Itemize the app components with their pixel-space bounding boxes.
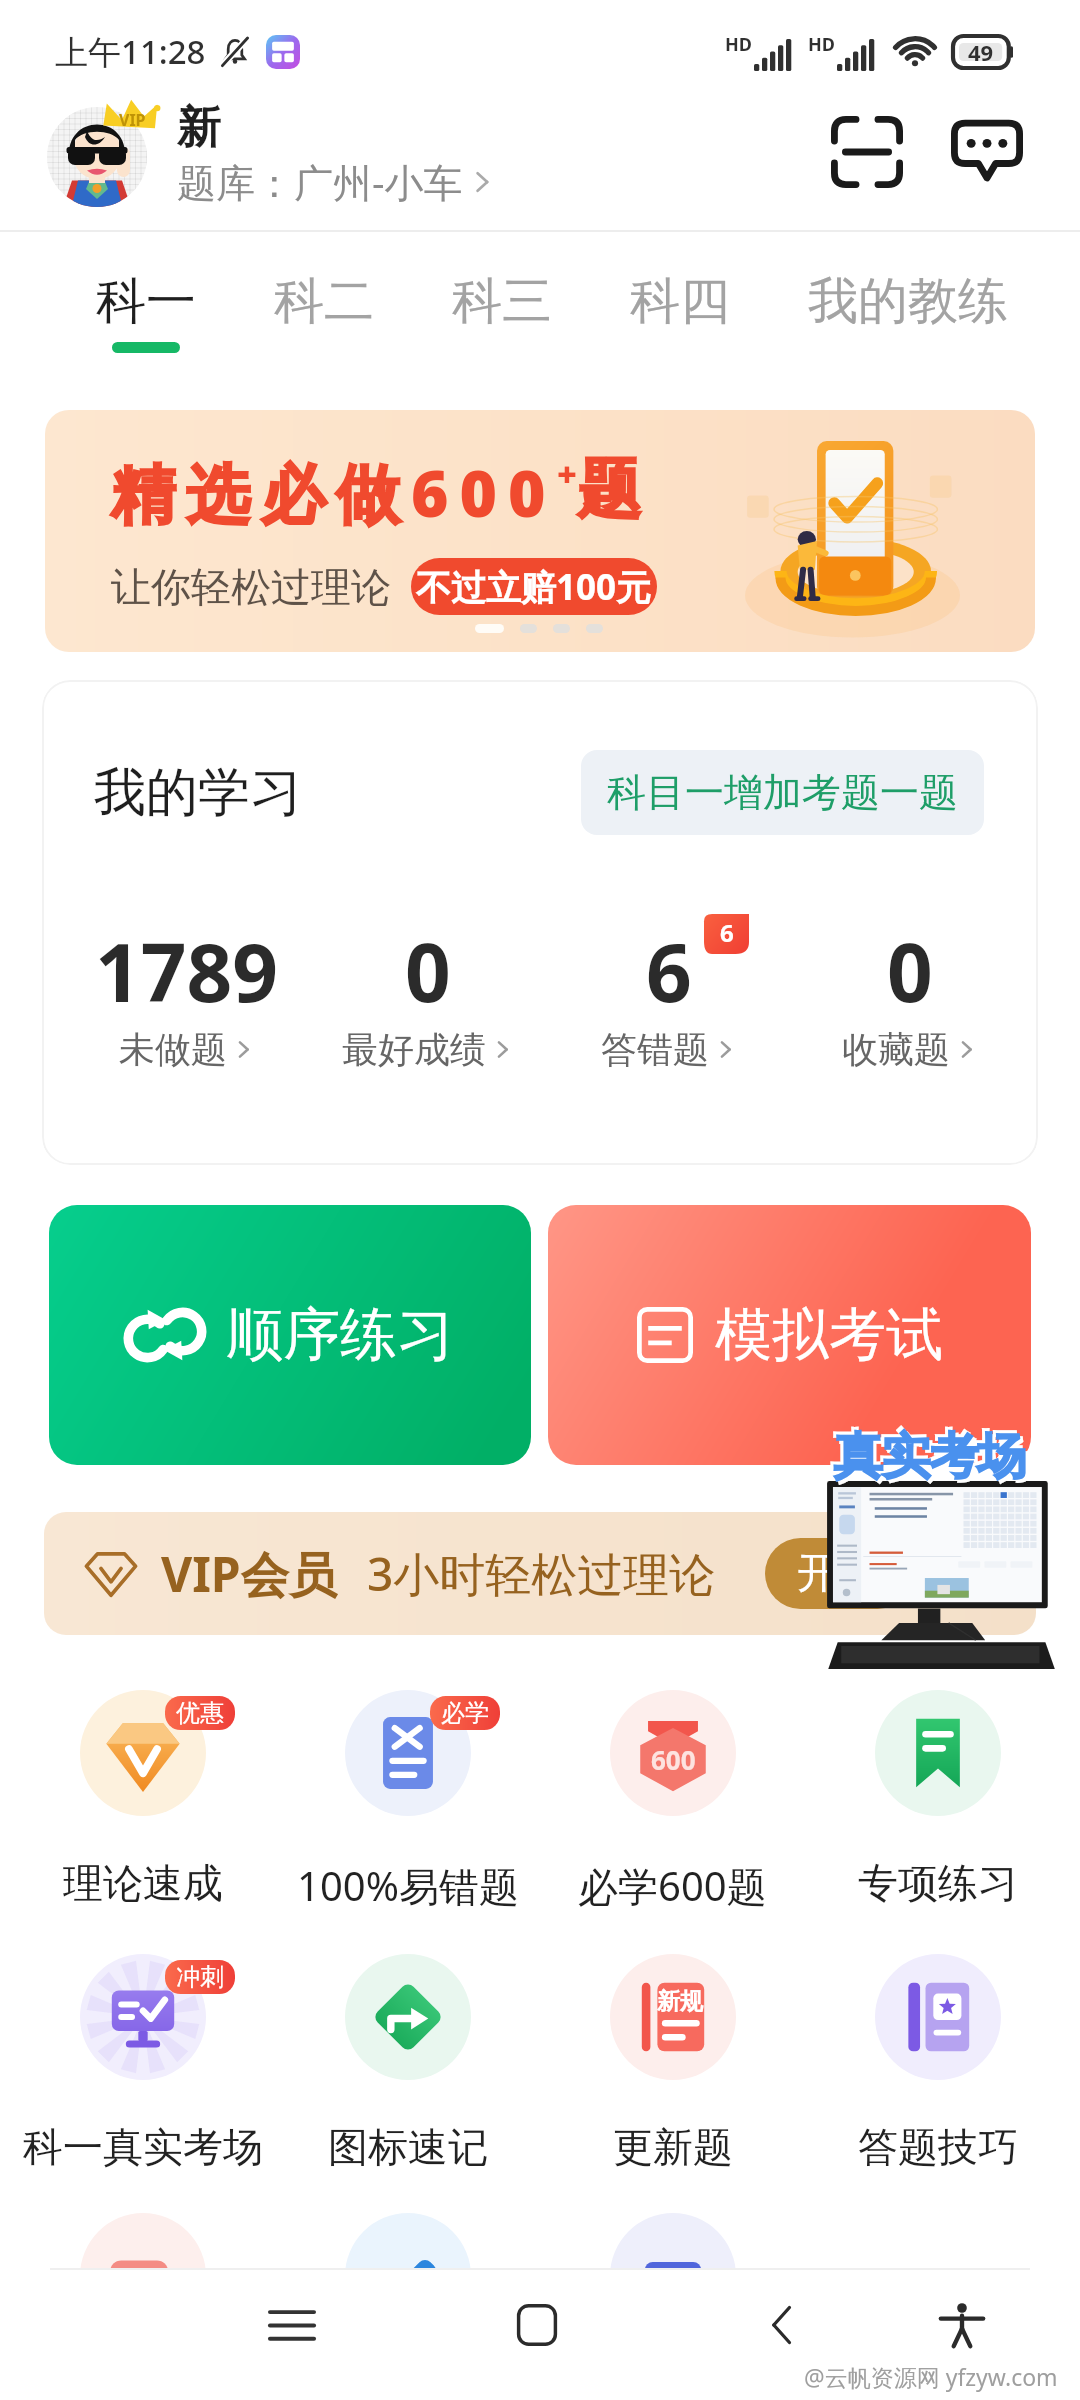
button[interactable]: Scan code <box>812 97 922 207</box>
button[interactable]: 科一 <box>96 234 196 380</box>
button[interactable]: Real exam room ad <box>818 1420 1058 1672</box>
staticText: 科二 <box>274 270 374 333</box>
button[interactable]: 我的教练 <box>808 234 1008 380</box>
button[interactable]: Recents <box>237 2270 347 2380</box>
button[interactable]: 科目一增加考题一题 <box>581 750 984 835</box>
staticText: 答题技巧 <box>858 2122 1018 2172</box>
staticText: 真实考场 <box>834 1426 1026 1488</box>
button[interactable]: 6 <box>548 916 789 1072</box>
button[interactable]: Messages <box>932 97 1042 207</box>
staticText: 精选必做600 <box>111 449 557 536</box>
staticText: 6 <box>646 916 692 1025</box>
staticText: 真实考场 <box>831 1423 1023 1485</box>
button[interactable]: 优惠 <box>10 1690 275 1908</box>
staticText: 题 <box>577 449 641 530</box>
staticText: 模拟考试 <box>715 1299 943 1371</box>
button[interactable]: 0 <box>307 916 548 1072</box>
staticText: 0 <box>887 916 933 1025</box>
staticText: 不过立赔100元 <box>416 563 652 611</box>
staticText: VIP <box>119 109 146 131</box>
staticText: 冲刺 <box>176 1962 224 1992</box>
button[interactable]: Profile avatar <box>47 98 159 207</box>
button[interactable]: 新规 <box>540 1954 805 2172</box>
button[interactable] <box>275 2213 540 2400</box>
staticText: 开通 <box>797 1547 881 1600</box>
button[interactable]: Back <box>728 2270 838 2380</box>
staticText: 必学600题 <box>578 1858 767 1913</box>
staticText: + <box>557 451 577 497</box>
button[interactable]: 70+ <box>540 2213 805 2400</box>
staticText: 收藏题 <box>842 1027 950 1072</box>
button[interactable]: 必学 <box>275 1690 540 1913</box>
staticText: 100%易错题 <box>297 1858 519 1913</box>
staticText: HD <box>808 32 835 57</box>
button[interactable]: 顺序练习 <box>49 1205 531 1465</box>
staticText: 3小时轻松过理论 <box>367 1542 716 1605</box>
staticText: 答错题 <box>601 1027 709 1072</box>
button[interactable]: 精选必做600 <box>45 410 1035 652</box>
staticText: 0 <box>405 916 451 1025</box>
button[interactable]: 图标速记 <box>275 1954 540 2172</box>
staticText: 上午11:28 <box>55 29 206 74</box>
button[interactable]: 1789 <box>66 916 307 1072</box>
button[interactable]: Home <box>482 2270 592 2380</box>
staticText: 优惠 <box>176 1698 224 1728</box>
staticText: 最好成绩 <box>342 1027 486 1072</box>
button[interactable]: 0 <box>789 916 1030 1072</box>
button[interactable]: 答题技巧 <box>805 1954 1070 2172</box>
staticText: 新规 <box>657 1987 703 2016</box>
staticText: 49 <box>968 37 994 67</box>
staticText: 600 <box>651 1742 696 1777</box>
button[interactable]: 科四 <box>630 234 730 380</box>
staticText: VIP会员 <box>161 1541 337 1607</box>
staticText: 真实考场 <box>837 1429 1029 1491</box>
staticText: 必学 <box>441 1698 489 1728</box>
staticText: 更新题 <box>613 2122 733 2172</box>
button[interactable] <box>805 2213 1070 2400</box>
button[interactable]: 模拟考试 <box>548 1205 1031 1465</box>
staticText: 题库：广州-小车 <box>177 155 463 208</box>
staticText: 科一真实考场 <box>23 2122 263 2172</box>
staticText: 顺序练习 <box>226 1299 454 1371</box>
button[interactable]: 专项练习 <box>805 1690 1070 1908</box>
staticText: 专项练习 <box>858 1858 1018 1908</box>
staticText: 我的教练 <box>808 270 1008 333</box>
staticText: 让你轻松过理论 <box>111 562 391 612</box>
button[interactable]: 新 <box>177 97 812 208</box>
staticText: @云帆资源网 yfzyw.com <box>804 2361 1058 2392</box>
staticText: 科三 <box>452 270 552 333</box>
button[interactable]: 冲刺 <box>10 1954 275 2172</box>
staticText: 科四 <box>630 270 730 333</box>
button[interactable]: VIP会员 <box>44 1512 1036 1635</box>
button[interactable]: 科二 <box>274 234 374 380</box>
staticText: 1789 <box>95 916 279 1025</box>
staticText: HD <box>725 32 752 57</box>
staticText: 图标速记 <box>328 2122 488 2172</box>
staticText: 新 <box>177 100 221 155</box>
button[interactable]: 科三 <box>452 234 552 380</box>
staticText: 70+ <box>652 2264 694 2297</box>
button[interactable] <box>10 2213 275 2400</box>
button[interactable]: 600 <box>540 1690 805 1913</box>
staticText: 科一 <box>96 270 196 333</box>
staticText: 科目一增加考题一题 <box>607 768 958 817</box>
staticText: 6 <box>720 916 734 949</box>
staticText: 我的学习 <box>94 760 302 826</box>
button[interactable]: Accessibility <box>907 2270 1017 2380</box>
staticText: 理论速成 <box>63 1858 223 1908</box>
staticText: 未做题 <box>119 1027 227 1072</box>
